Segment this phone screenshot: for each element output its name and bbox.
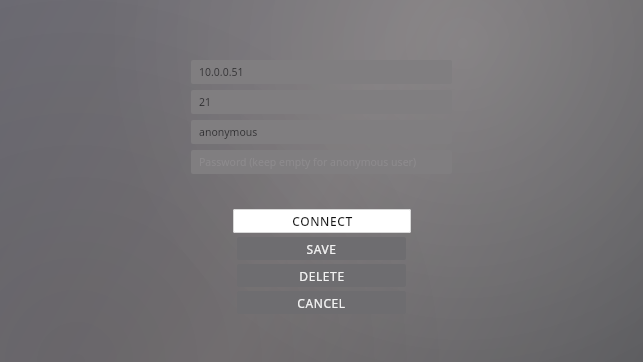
staticText: 10.0.0.51 [199, 65, 244, 79]
button[interactable]: SAVE [237, 237, 406, 260]
staticText: SAVE [306, 241, 337, 257]
button[interactable]: CONNECT [233, 209, 411, 233]
button[interactable]: 10.0.0.51 [191, 60, 452, 84]
staticText: DELETE [299, 268, 345, 284]
staticText: anonymous [199, 125, 258, 139]
button[interactable]: 21 [191, 90, 452, 114]
staticText: 21 [199, 95, 212, 109]
button[interactable]: DELETE [237, 264, 406, 287]
staticText: Password (keep empty for anonymous user) [199, 155, 417, 169]
button[interactable]: CANCEL [237, 291, 406, 314]
staticText: CONNECT [292, 213, 353, 229]
staticText: CANCEL [297, 295, 346, 311]
button[interactable]: anonymous [191, 120, 452, 144]
